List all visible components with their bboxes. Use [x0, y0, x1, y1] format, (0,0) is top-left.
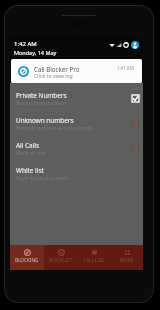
button[interactable]: CALL LOG [77, 245, 110, 270]
staticText: Unknown numbers [16, 116, 74, 125]
staticText: Block private numbers [16, 100, 67, 107]
staticText: Click to view log [34, 72, 73, 79]
staticText: Never blocked numbers [16, 175, 70, 182]
staticText: Block all calls [16, 150, 46, 157]
staticText: 1:41 AM [117, 65, 134, 71]
button[interactable]: All Calls [10, 136, 143, 161]
staticText: Block all numbers except contacts [16, 125, 93, 132]
button[interactable]: White list [10, 161, 143, 186]
button[interactable]: Private Numbers [10, 86, 143, 111]
button[interactable]: BLOCKING [10, 245, 44, 270]
button[interactable]: Unknown numbers [10, 111, 143, 136]
staticText: White list [16, 166, 44, 175]
button[interactable]: All Calls [129, 142, 142, 155]
staticText: BLACKLIST [49, 257, 73, 263]
staticText: MORE [120, 257, 134, 263]
button[interactable]: BLACKLIST [44, 245, 77, 270]
staticText: Call Blocker Pro [34, 65, 80, 73]
staticText: Private Numbers [16, 91, 67, 100]
staticText: BLOCKING [15, 257, 39, 263]
button[interactable]: Call Blocker Pro [11, 59, 142, 83]
staticText: All Calls [16, 141, 40, 150]
button[interactable]: Private Numbers [129, 92, 142, 105]
button[interactable]: MORE [110, 245, 143, 270]
staticText: Monday, 14 May [14, 49, 57, 56]
button[interactable]: Unknown numbers [129, 117, 142, 130]
staticText: 1:42 AM [14, 40, 37, 48]
staticText: CALL LOG [83, 257, 105, 263]
